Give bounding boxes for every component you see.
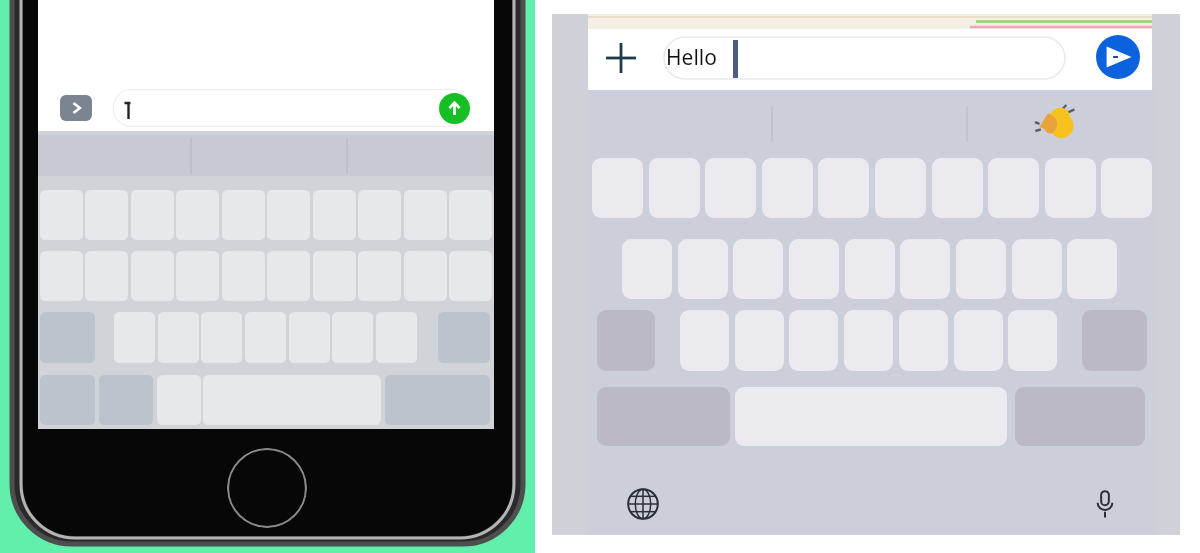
button[interactable]: z — [680, 310, 729, 371]
button[interactable]: Voice input — [1087, 486, 1123, 522]
button[interactable]: c — [789, 310, 838, 371]
button[interactable]: w — [649, 158, 700, 218]
button[interactable]: Add attachment — [603, 40, 639, 76]
button[interactable]: Home — [227, 448, 307, 528]
button[interactable]: Expand apps — [60, 95, 92, 121]
button[interactable]: t — [818, 158, 869, 218]
button[interactable]: m — [1008, 310, 1057, 371]
button[interactable]: j — [956, 239, 1006, 299]
button[interactable]: n — [954, 310, 1003, 371]
button[interactable]: r — [762, 158, 813, 218]
button[interactable]: u — [932, 158, 983, 218]
button[interactable]: s — [678, 239, 728, 299]
button[interactable]: f — [789, 239, 839, 299]
button[interactable]: e — [705, 158, 756, 218]
button[interactable]: Send — [439, 93, 470, 124]
button[interactable]: g — [845, 239, 895, 299]
button[interactable]: Change keyboard language — [625, 486, 661, 522]
button[interactable]: h — [900, 239, 950, 299]
button[interactable]: o — [1045, 158, 1096, 218]
button[interactable]: y — [875, 158, 926, 218]
button[interactable]: q — [592, 158, 643, 218]
button[interactable]: a — [622, 239, 672, 299]
button[interactable]: Send — [1096, 35, 1140, 79]
button[interactable] — [113, 89, 469, 127]
button[interactable]: b — [899, 310, 948, 371]
button[interactable]: p — [1101, 158, 1152, 218]
button[interactable]: l — [1067, 239, 1117, 299]
button[interactable]: x — [735, 310, 784, 371]
button[interactable]: k — [1012, 239, 1062, 299]
button[interactable]: v — [844, 310, 893, 371]
staticText: Hello — [666, 43, 717, 72]
button[interactable]: Clapping hands emoji suggestion — [1034, 103, 1080, 143]
button[interactable]: Shift — [597, 310, 655, 371]
button[interactable]: i — [988, 158, 1039, 218]
button[interactable]: d — [733, 239, 783, 299]
